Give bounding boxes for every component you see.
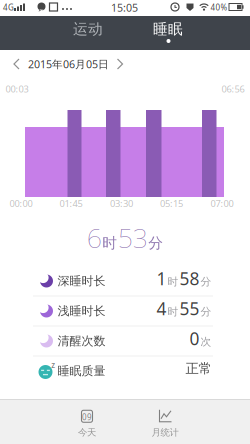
staticText: 清醒次数 (57, 334, 105, 348)
staticText: 分 (200, 275, 211, 288)
staticText: 2015年06月05日 (28, 57, 109, 71)
staticText: 4G (3, 2, 14, 13)
staticText: 00:00 (9, 197, 32, 210)
staticText: 时 (167, 275, 178, 288)
staticText: 40% (210, 2, 227, 13)
staticText: 4 (156, 297, 166, 320)
button[interactable]: 09 (52, 402, 122, 444)
staticText: 01:45 (59, 197, 82, 210)
staticText: 15:05 (111, 0, 138, 15)
staticText: 05:15 (160, 197, 183, 210)
staticText: 浅睡时长 (57, 304, 105, 318)
staticText: 00:03 (5, 83, 28, 95)
staticText: 时 (167, 305, 178, 318)
staticText: 07:00 (210, 197, 233, 210)
staticText: 睡眠质量 (57, 364, 105, 378)
staticText: z (51, 359, 55, 370)
staticText: 分 (200, 305, 211, 318)
button[interactable]: 后一天 (110, 50, 128, 78)
staticText: 1 (156, 267, 166, 290)
button[interactable]: 睡眠 (128, 16, 208, 50)
staticText: 53 (118, 220, 148, 255)
staticText: 深睡时长 (57, 274, 105, 288)
button[interactable]: 前一天 (8, 50, 26, 78)
button[interactable]: 月统计 (130, 402, 200, 444)
staticText: 06:56 (221, 83, 244, 95)
staticText: 03:30 (110, 197, 133, 210)
staticText: 55 (179, 297, 199, 320)
staticText: 月统计 (151, 427, 178, 438)
staticText: 今天 (78, 427, 96, 438)
staticText: 睡眠 (153, 20, 183, 38)
staticText: 运动 (73, 20, 103, 38)
staticText: 次 (200, 335, 211, 348)
button[interactable]: 运动 (48, 16, 128, 50)
staticText: 09 (82, 412, 92, 423)
staticText: 58 (179, 267, 199, 290)
staticText: 分 (148, 234, 163, 252)
staticText: 时 (102, 234, 117, 252)
staticText: 0 (189, 327, 199, 350)
staticText: 正常 (185, 360, 211, 377)
staticText: 6 (87, 220, 102, 255)
